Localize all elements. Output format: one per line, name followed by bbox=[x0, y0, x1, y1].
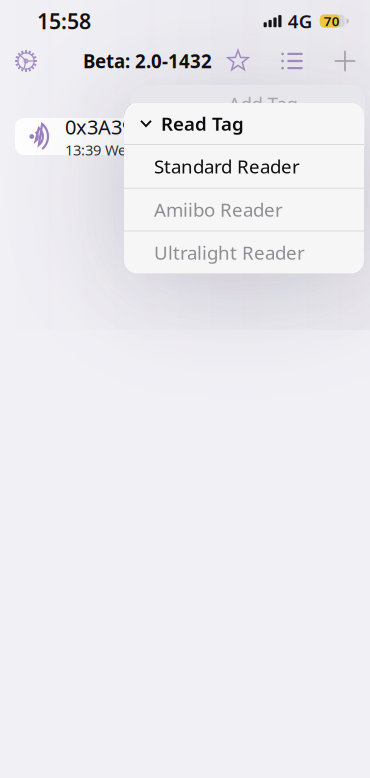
button[interactable]: Standard Reader bbox=[124, 145, 364, 188]
button[interactable]: Add tag bbox=[329, 42, 361, 80]
button[interactable]: Favourites bbox=[222, 42, 254, 80]
staticText: Standard Reader bbox=[154, 154, 300, 179]
button[interactable]: Read Tag bbox=[124, 103, 364, 144]
button[interactable]: Settings bbox=[11, 42, 41, 80]
button[interactable]: Ultralight Reader bbox=[124, 231, 364, 273]
staticText: 13:39 Wed 3 Sep bbox=[65, 140, 176, 159]
button[interactable]: 0x3A39FE28 bbox=[15, 118, 355, 155]
staticText: Add Tag bbox=[228, 91, 297, 116]
button[interactable]: Amiibo Reader bbox=[124, 189, 364, 231]
staticText: Read Tag bbox=[161, 111, 244, 136]
staticText: 4G bbox=[288, 9, 313, 33]
button[interactable]: Tag list bbox=[276, 42, 308, 80]
staticText: 0x3A39FE28 bbox=[65, 113, 176, 140]
staticText: Ultralight Reader bbox=[154, 240, 305, 265]
staticText: 70 bbox=[324, 12, 340, 30]
staticText: Beta: 2.0-1432 bbox=[83, 49, 212, 73]
staticText: Amiibo Reader bbox=[154, 197, 283, 222]
staticText: 15:58 bbox=[37, 7, 91, 35]
